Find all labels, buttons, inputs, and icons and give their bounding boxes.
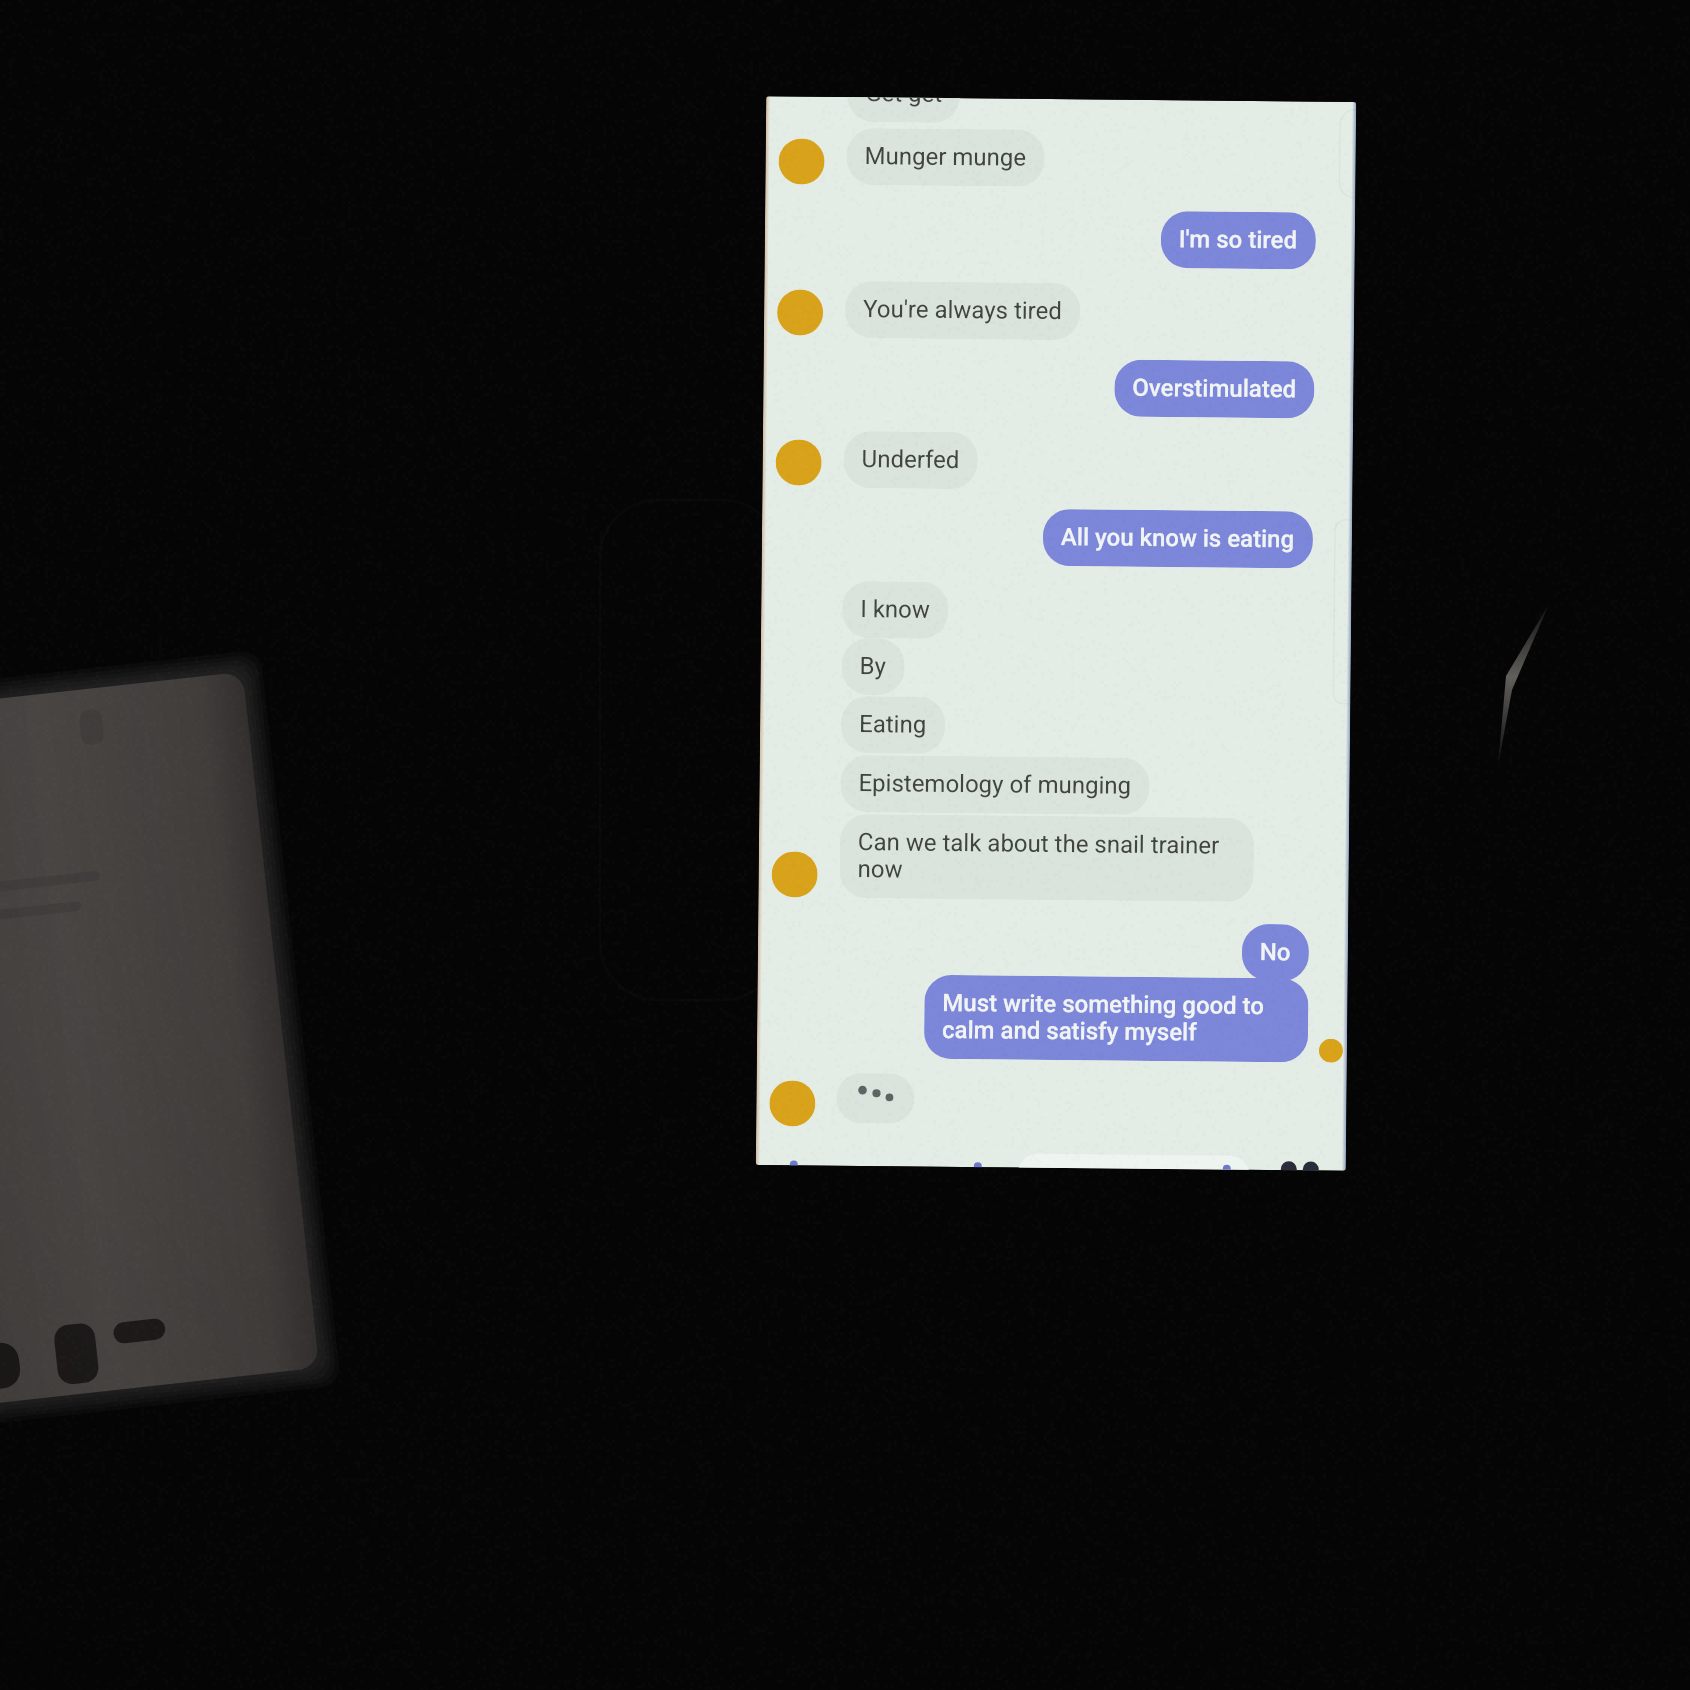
staticText: Eating <box>859 711 927 739</box>
staticText: You're always tired <box>863 296 1062 325</box>
button[interactable]: Contact avatar <box>775 439 822 486</box>
button[interactable]: I'm so tired <box>1161 211 1316 269</box>
button[interactable]: No <box>1242 924 1309 981</box>
button[interactable]: Contact avatar <box>778 138 825 185</box>
staticText: Overstimulated <box>1132 375 1297 403</box>
staticText: I know <box>860 596 930 624</box>
staticText: Munger munge <box>864 143 1027 172</box>
button[interactable]: Epistemology of munging <box>840 755 1150 815</box>
button[interactable]: Typing indicator <box>836 1073 915 1124</box>
button[interactable]: Underfed <box>843 431 978 489</box>
button[interactable]: Eating <box>841 696 945 754</box>
button[interactable]: Contact avatar <box>1319 1039 1343 1063</box>
button[interactable]: Munger munge <box>846 128 1045 187</box>
staticText: Epistemology of munging <box>858 770 1132 800</box>
staticText: Must write something good to calm and sa… <box>942 990 1290 1047</box>
button[interactable]: Overstimulated <box>1114 360 1315 419</box>
button[interactable]: Must write something good to calm and sa… <box>924 975 1309 1062</box>
button[interactable]: I know <box>842 581 948 639</box>
staticText: Get get <box>865 97 942 108</box>
staticText: Underfed <box>862 446 960 474</box>
button[interactable]: Get get <box>847 97 960 123</box>
staticText: Can we talk about the snail trainer now <box>858 829 1236 887</box>
staticText: No <box>1260 939 1291 966</box>
button[interactable]: All you know is eating <box>1043 509 1313 568</box>
staticText: All you know is eating <box>1061 524 1295 553</box>
button[interactable]: You're always tired <box>845 281 1080 340</box>
button[interactable]: By <box>841 638 905 695</box>
staticText: By <box>859 653 887 680</box>
button[interactable]: Contact avatar <box>769 1080 816 1127</box>
staticText: I'm so tired <box>1179 226 1298 254</box>
button[interactable]: Contact avatar <box>771 851 818 898</box>
button[interactable]: Contact avatar <box>777 289 823 336</box>
button[interactable]: Can we talk about the snail trainer now <box>839 814 1254 902</box>
